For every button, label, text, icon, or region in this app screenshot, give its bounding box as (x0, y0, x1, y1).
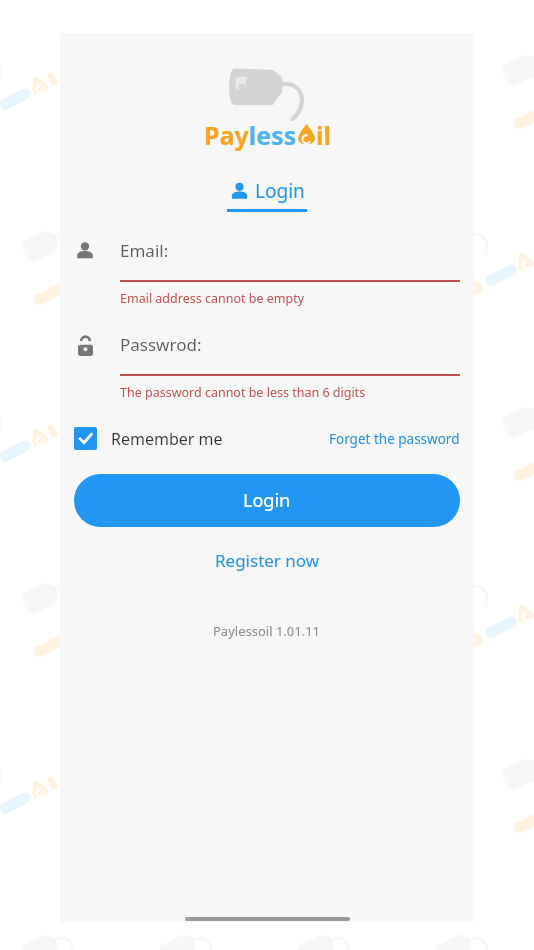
button[interactable]: Register now (209, 543, 326, 578)
staticText: Email address cannot be empty (120, 290, 305, 307)
other: Email (74, 240, 120, 262)
staticText: Register now (215, 549, 320, 572)
other: Password (74, 333, 120, 356)
staticText: Login (255, 178, 305, 204)
staticText: Forget the password (329, 430, 460, 448)
staticText: Passwrod: (120, 333, 202, 356)
staticText: Paylessoil 1.01.11 (213, 622, 321, 640)
button[interactable]: Login (223, 178, 311, 212)
staticText: Remember me (111, 428, 223, 450)
button[interactable]: Remember me (74, 423, 223, 454)
staticText: The password cannot be less than 6 digit… (120, 384, 366, 401)
staticText: Login (243, 488, 291, 513)
staticText: il (316, 118, 331, 152)
staticText: Email: (120, 239, 169, 262)
button[interactable]: Forget the password (329, 426, 460, 452)
staticText: Payless (204, 118, 297, 152)
button[interactable]: Login (74, 474, 460, 527)
